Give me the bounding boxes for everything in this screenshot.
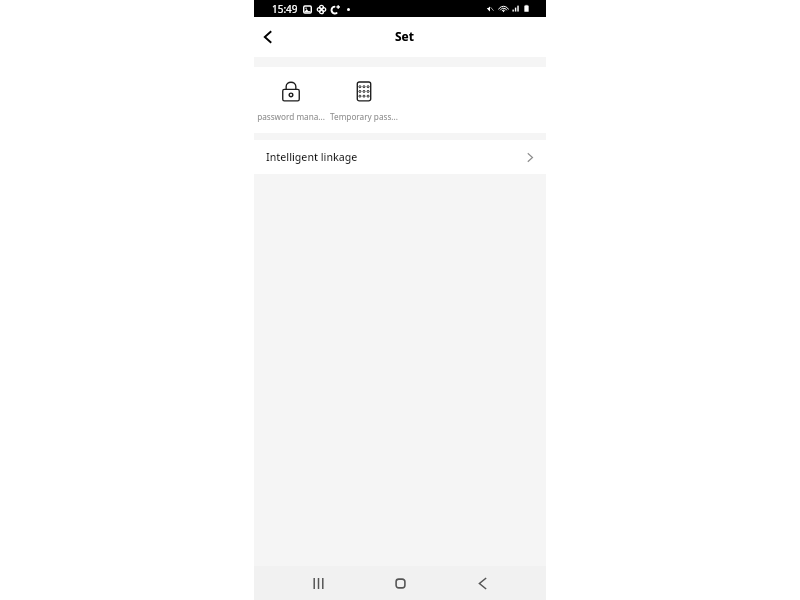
staticText: Set (395, 28, 414, 44)
button[interactable]: Back (253, 22, 283, 52)
button[interactable]: Recents (277, 566, 359, 600)
staticText: Set (395, 28, 414, 44)
button[interactable]: Back (441, 566, 523, 600)
button[interactable]: Home (359, 566, 441, 600)
button[interactable]: Temporary pass... (319, 67, 409, 122)
staticText: Temporary pass... (330, 111, 398, 122)
button[interactable]: Intelligent linkage (254, 140, 546, 174)
staticText: password mana... (257, 111, 325, 122)
staticText: Intelligent linkage (266, 150, 358, 164)
staticText: 15:49 (272, 2, 298, 16)
button[interactable]: password mana... (246, 67, 336, 122)
